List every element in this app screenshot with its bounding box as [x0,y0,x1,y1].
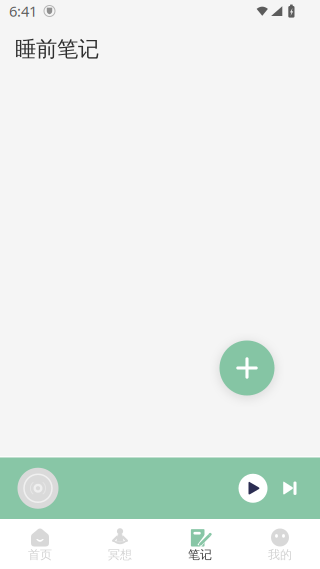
staticText: 笔记 [188,547,212,562]
button[interactable]: 笔记 [160,519,240,569]
button[interactable]: 冥想 [80,519,160,569]
button[interactable]: Next track [279,477,301,499]
button[interactable]: 首页 [0,519,80,569]
staticText: 我的 [268,547,292,562]
staticText: 冥想 [108,547,132,562]
button[interactable]: Add note [219,340,274,395]
staticText: 睡前笔记 [15,36,99,62]
staticText: 6:41 [9,1,37,21]
button[interactable]: 我的 [240,519,320,569]
staticText: 首页 [28,547,52,562]
button[interactable]: Play [236,471,270,505]
